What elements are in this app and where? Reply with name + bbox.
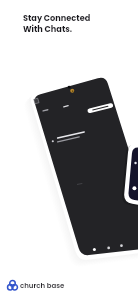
staticText: church base bbox=[20, 281, 65, 291]
other: Church Base logo bbox=[7, 280, 18, 291]
button[interactable]: Church Base logo bbox=[7, 280, 65, 291]
staticText: With Chats. bbox=[23, 23, 73, 34]
staticText: Stay Connected bbox=[23, 12, 91, 23]
